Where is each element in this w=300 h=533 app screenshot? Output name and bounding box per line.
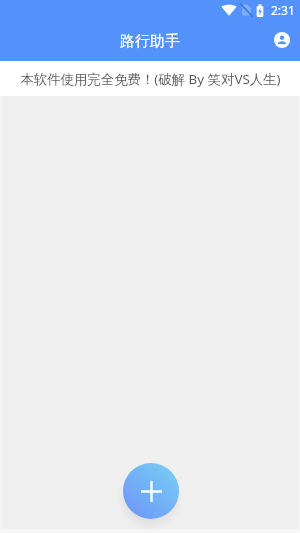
staticText: 2:31 — [271, 2, 295, 18]
staticText: 本软件使用完全免费！(破解 By 笑对VS人生) — [20, 70, 281, 88]
button[interactable]: Account — [268, 26, 296, 54]
staticText: 路行助手 — [120, 32, 180, 51]
button[interactable]: Add — [123, 463, 179, 519]
